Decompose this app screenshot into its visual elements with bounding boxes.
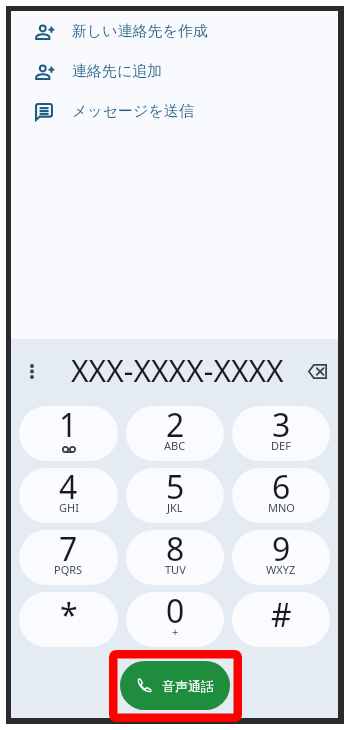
button[interactable]: 新しい連絡先を作成: [11, 12, 338, 51]
button[interactable]: 2: [126, 406, 224, 461]
button[interactable]: 8: [126, 530, 224, 585]
staticText: 音声通話: [162, 678, 214, 694]
button[interactable]: 7: [19, 530, 118, 585]
staticText: 3: [272, 406, 291, 447]
button[interactable]: *: [19, 592, 118, 647]
button[interactable]: #: [232, 592, 330, 647]
staticText: 新しい連絡先を作成: [72, 22, 209, 41]
staticText: TUV: [165, 562, 186, 577]
button[interactable]: 音声通話: [120, 661, 230, 710]
button[interactable]: More options: [15, 354, 49, 388]
staticText: DEF: [271, 438, 291, 453]
button[interactable]: 4: [19, 468, 118, 523]
button[interactable]: 9: [232, 530, 330, 585]
staticText: +: [172, 624, 179, 639]
button[interactable]: 3: [232, 406, 330, 461]
staticText: 5: [166, 468, 185, 509]
staticText: 9: [272, 530, 291, 571]
button[interactable]: メッセージを送信: [11, 92, 338, 131]
button[interactable]: 1: [19, 406, 118, 461]
button[interactable]: 0: [126, 592, 224, 647]
staticText: WXYZ: [266, 562, 296, 577]
staticText: ABC: [164, 438, 186, 453]
staticText: MNO: [268, 500, 295, 515]
staticText: XXX-XXXX-XXXX: [71, 350, 284, 391]
staticText: #: [271, 593, 292, 637]
staticText: 1: [59, 406, 78, 447]
button[interactable]: 5: [126, 468, 224, 523]
staticText: 0: [166, 592, 185, 633]
button[interactable]: Backspace: [300, 354, 334, 388]
staticText: 7: [59, 530, 78, 571]
staticText: 2: [166, 406, 185, 447]
staticText: *: [60, 593, 78, 637]
staticText: 4: [59, 468, 78, 509]
staticText: 6: [272, 468, 291, 509]
staticText: 8: [166, 530, 185, 571]
staticText: JKL: [167, 500, 183, 515]
staticText: 連絡先に追加: [72, 62, 163, 81]
staticText: GHI: [59, 500, 79, 515]
staticText: PQRS: [54, 562, 83, 577]
button[interactable]: 6: [232, 468, 330, 523]
button[interactable]: 連絡先に追加: [11, 51, 338, 92]
staticText: メッセージを送信: [72, 102, 194, 121]
